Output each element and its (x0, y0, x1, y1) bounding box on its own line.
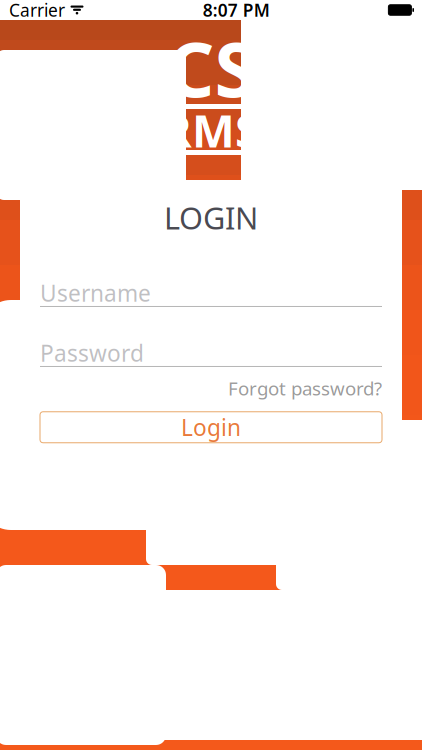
staticText: Carrier (9, 0, 65, 21)
staticText: RMS (162, 100, 260, 160)
button[interactable]: Forgot password? (228, 373, 382, 404)
staticText: Username (40, 278, 151, 308)
staticText: CS (166, 18, 255, 118)
staticText: Forgot password? (228, 376, 382, 401)
staticText: LOGIN (164, 197, 258, 238)
staticText: Login (181, 412, 241, 442)
staticText: Password (40, 338, 144, 368)
button[interactable]: Login (40, 412, 382, 443)
staticText: 8:07 PM (203, 0, 270, 21)
